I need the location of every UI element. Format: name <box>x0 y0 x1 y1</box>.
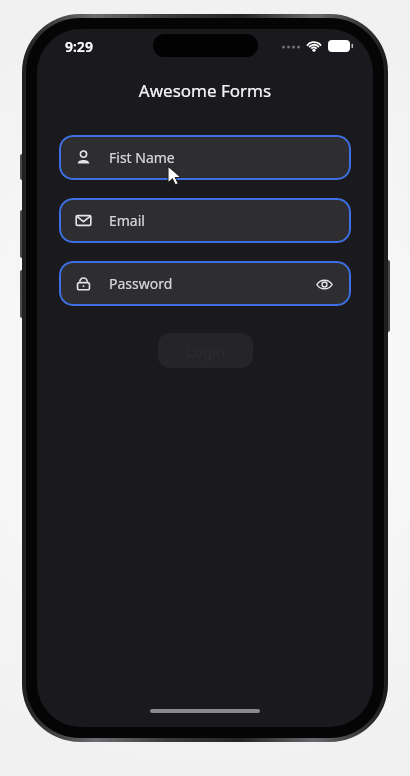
staticText: Awesome Forms <box>37 79 373 102</box>
button[interactable]: Password <box>59 261 351 306</box>
button[interactable]: Show password <box>313 273 335 295</box>
staticText: 9:29 <box>65 37 93 56</box>
button[interactable]: Fist Name <box>59 135 351 180</box>
button[interactable]: Email <box>59 198 351 243</box>
staticText: Password <box>109 274 173 293</box>
staticText: Email <box>109 211 145 230</box>
staticText: Fist Name <box>109 148 175 167</box>
